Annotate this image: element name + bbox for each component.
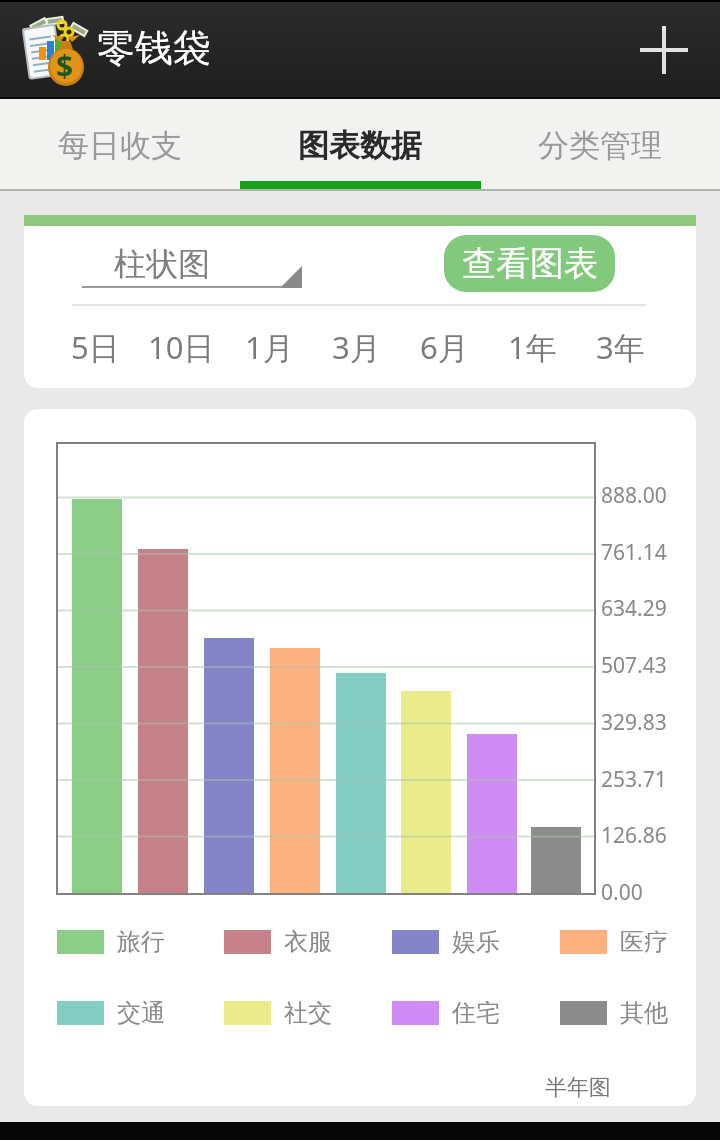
staticText: 社交 (284, 998, 332, 1028)
staticText: 761.14 (601, 538, 667, 567)
staticText: 柱状图 (114, 244, 210, 284)
staticText: 507.43 (601, 651, 667, 680)
staticText: 医疗 (620, 927, 668, 957)
staticText: 6月 (420, 326, 469, 368)
button[interactable]: 柱状图 (82, 240, 302, 288)
button[interactable]: 5日 (47, 319, 143, 375)
staticText: 图表数据 (298, 126, 422, 165)
button[interactable]: 10日 (133, 319, 229, 375)
staticText: $ (56, 45, 74, 86)
button[interactable]: 分类管理 (480, 99, 720, 191)
button[interactable] (632, 18, 696, 82)
staticText: 每日收支 (58, 126, 182, 165)
staticText: 1年 (508, 326, 557, 368)
staticText: 其他 (620, 998, 668, 1028)
staticText: 交通 (117, 998, 165, 1028)
staticText: 3月 (332, 326, 381, 368)
button[interactable]: 6月 (396, 319, 492, 375)
staticText: 126.86 (601, 821, 667, 850)
button[interactable]: 1月 (221, 319, 317, 375)
staticText: 329.83 (601, 708, 667, 737)
button[interactable]: 查看图表 (444, 235, 615, 292)
staticText: 0.00 (601, 878, 643, 907)
button[interactable]: 1年 (484, 319, 580, 375)
staticText: 888.00 (601, 481, 667, 510)
staticText: 住宅 (452, 998, 500, 1028)
staticText: 半年图 (545, 1074, 611, 1102)
staticText: 查看图表 (462, 242, 598, 285)
staticText: 5日 (71, 326, 120, 368)
staticText: 3年 (596, 326, 645, 368)
button[interactable]: 3月 (308, 319, 404, 375)
staticText: 1月 (245, 326, 294, 368)
staticText: 旅行 (117, 927, 165, 957)
staticText: 分类管理 (538, 126, 662, 165)
staticText: 娱乐 (452, 927, 500, 957)
button[interactable]: 3年 (572, 319, 668, 375)
button[interactable]: 每日收支 (0, 99, 240, 191)
staticText: 衣服 (284, 927, 332, 957)
staticText: 634.29 (601, 594, 667, 623)
staticText: 253.71 (601, 765, 667, 794)
staticText: 零钱袋 (97, 24, 211, 72)
staticText: 10日 (148, 326, 215, 368)
button[interactable]: 图表数据 (240, 99, 480, 191)
